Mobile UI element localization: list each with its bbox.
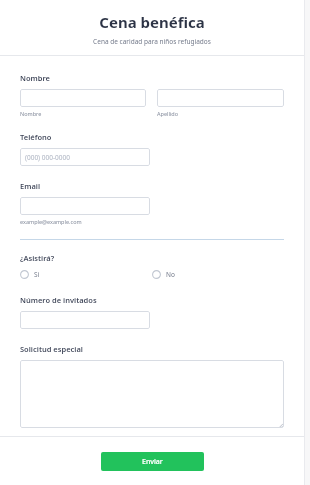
button[interactable]: No [152,270,284,279]
button[interactable] [20,89,146,107]
button[interactable]: Enviar [101,452,204,471]
button[interactable] [20,311,150,329]
button[interactable] [20,197,150,215]
staticText: Enviar [142,457,163,467]
staticText: Nombre [20,73,50,83]
staticText: example@example.com [20,218,82,225]
button[interactable] [157,89,284,107]
button[interactable]: (000) 000-0000 [20,148,150,166]
staticText: Cena de caridad para niños refugiados [93,37,211,46]
staticText: Email [20,181,41,191]
button[interactable]: Si [20,270,152,279]
staticText: Número de invitados [20,295,97,305]
staticText: Teléfono [20,132,52,142]
button[interactable] [20,360,284,428]
staticText: (000) 000-0000 [25,153,70,162]
staticText: Nombre [20,110,42,117]
staticText: ¿Asistirá? [20,253,55,263]
staticText: Si [34,270,40,279]
staticText: Apellido [157,110,178,117]
staticText: No [166,270,175,279]
staticText: Cena benéfica [99,12,205,32]
staticText: Solicitud especial [20,344,83,354]
